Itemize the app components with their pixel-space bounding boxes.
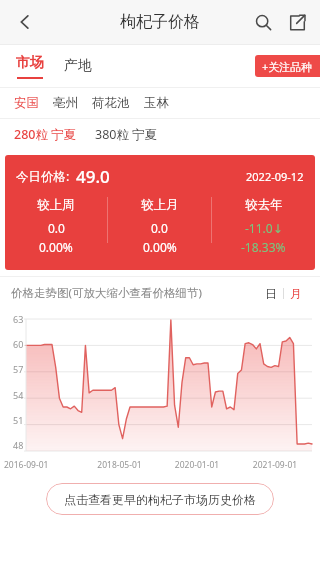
staticText: 市场 [16, 54, 44, 72]
staticText: 月 [290, 286, 302, 301]
button[interactable]: 安国 [14, 95, 53, 111]
staticText: 57 [13, 363, 24, 375]
staticText: 点击查看更早的枸杞子市场历史价格 [64, 492, 256, 507]
button[interactable]: 月 [284, 286, 308, 301]
staticText: 0.00% [39, 239, 73, 255]
staticText: 今日价格: [16, 168, 70, 185]
button[interactable]: Share [280, 5, 314, 39]
button[interactable]: 亳州 [53, 95, 92, 111]
button[interactable]: 380粒 宁夏 [95, 126, 158, 143]
staticText: 280粒 宁夏 [14, 126, 77, 143]
staticText: 2018-05-01 [81, 459, 158, 471]
staticText: 2020-01-01 [158, 459, 236, 471]
staticText: 亳州 [53, 95, 78, 111]
staticText: 48 [13, 439, 24, 451]
button[interactable]: 点击查看更早的枸杞子市场历史价格 [46, 483, 274, 515]
staticText: 2022-09-12 [246, 169, 304, 184]
staticText: 较上周 [37, 197, 75, 213]
button[interactable]: 荷花池 [92, 95, 144, 111]
staticText: 枸杞子价格 [120, 12, 200, 32]
staticText: -18.33% [241, 239, 286, 255]
staticText: 2021-09-01 [236, 459, 314, 471]
staticText: 2016-09-01 [4, 459, 81, 471]
staticText: 380粒 宁夏 [95, 126, 158, 143]
staticText: 安国 [14, 95, 39, 111]
staticText: 玉林 [144, 95, 169, 111]
staticText: 63 [13, 313, 24, 325]
staticText: 较去年 [245, 197, 283, 213]
button[interactable]: 市场 [14, 54, 46, 79]
button[interactable]: Back [6, 3, 44, 41]
staticText: 51 [13, 414, 24, 426]
staticText: 54 [13, 389, 24, 401]
staticText: 0.0 [151, 220, 168, 236]
staticText: 荷花池 [92, 95, 130, 111]
staticText: 价格走势图(可放大缩小查看价格细节) [11, 285, 202, 301]
button[interactable]: 玉林 [144, 95, 183, 111]
staticText: 0.0 [48, 220, 65, 236]
staticText: 0.00% [143, 239, 177, 255]
button[interactable]: Search [246, 5, 280, 39]
button[interactable]: 产地 [62, 53, 94, 79]
button[interactable]: 日 [259, 286, 283, 301]
staticText: 较上月 [141, 197, 179, 213]
staticText: -11.0↓ [245, 220, 283, 236]
staticText: 49.0 [76, 165, 110, 188]
staticText: +关注品种 [262, 59, 313, 74]
staticText: 日 [265, 286, 277, 301]
button[interactable]: 今日价格: [5, 155, 315, 270]
staticText: 产地 [64, 57, 92, 75]
button[interactable]: +关注品种 [255, 55, 320, 77]
button[interactable]: 280粒 宁夏 [14, 126, 95, 143]
staticText: 60 [13, 338, 24, 350]
